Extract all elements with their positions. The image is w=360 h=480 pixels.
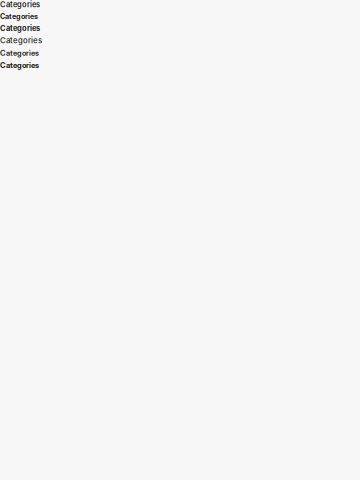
staticText: Categories [0, 24, 40, 33]
staticText: Categories [0, 12, 38, 21]
staticText: Categories [0, 60, 39, 70]
staticText: Categories [0, 0, 40, 9]
staticText: Categories [0, 48, 39, 57]
staticText: Categories [0, 36, 42, 45]
